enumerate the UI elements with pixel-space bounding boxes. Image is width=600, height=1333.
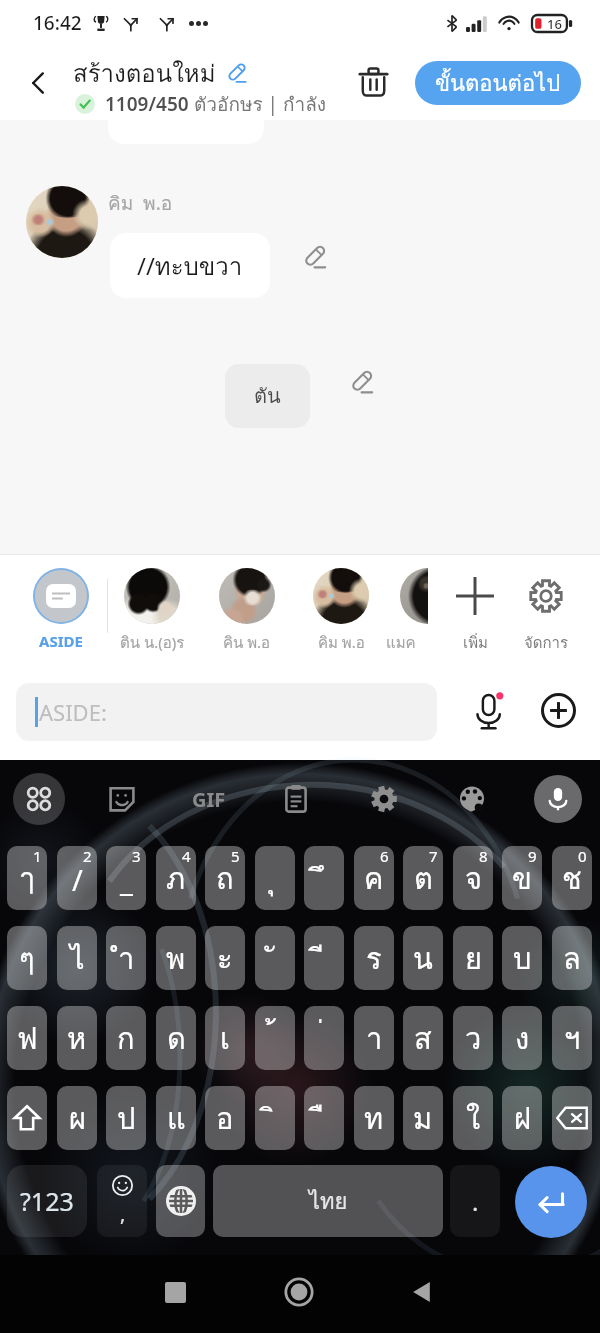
- button[interactable]: Delete: [350, 59, 396, 105]
- button[interactable]: Menu: [0, 760, 78, 838]
- button[interactable]: ๆ: [7, 926, 47, 990]
- staticText: ว: [465, 1016, 482, 1062]
- button[interactable]: จัดการ: [512, 555, 580, 655]
- button[interactable]: ฯ: [552, 1006, 592, 1070]
- button[interactable]: พ: [156, 926, 196, 990]
- staticText: _: [120, 860, 133, 899]
- button[interactable]: น: [403, 926, 443, 990]
- button[interactable]: ำ: [106, 926, 146, 990]
- button[interactable]: เ: [205, 1006, 245, 1070]
- button[interactable]: ึ: [304, 846, 344, 910]
- button[interactable]: ิ: [255, 1086, 295, 1150]
- button[interactable]: GIF: [165, 760, 252, 838]
- button[interactable]: ท: [354, 1086, 394, 1150]
- button[interactable]: ?123: [7, 1165, 87, 1237]
- button[interactable]: Avatar: [26, 186, 98, 258]
- button[interactable]: [552, 1086, 592, 1150]
- button[interactable]: แ: [156, 1086, 196, 1150]
- button[interactable]: ร: [354, 926, 394, 990]
- button[interactable]: ติน น.(อ)ร: [105, 555, 199, 660]
- button[interactable]: ไ: [57, 926, 97, 990]
- button[interactable]: _: [106, 846, 146, 910]
- button[interactable]: //ทะบขวา: [110, 233, 270, 298]
- button[interactable]: ตัน: [225, 364, 310, 428]
- button[interactable]: คิน พ.อ: [200, 555, 294, 660]
- staticText: ฟ: [17, 1016, 38, 1062]
- button[interactable]: ต: [403, 846, 443, 910]
- button[interactable]: Emoji: [97, 1165, 147, 1237]
- button[interactable]: ม: [403, 1086, 443, 1150]
- button[interactable]: ่: [304, 1006, 344, 1070]
- button[interactable]: [400, 568, 428, 624]
- staticText: พ: [166, 936, 186, 982]
- button[interactable]: Change language: [156, 1165, 205, 1237]
- button[interactable]: า: [354, 1006, 394, 1070]
- button[interactable]: ั: [255, 926, 295, 990]
- button[interactable]: ผ: [57, 1086, 97, 1150]
- button[interactable]: ๅ: [7, 846, 47, 910]
- staticText: /: [72, 860, 83, 899]
- button[interactable]: Clipboard: [252, 760, 340, 838]
- button[interactable]: ื: [304, 1086, 344, 1150]
- button[interactable]: ป: [106, 1086, 146, 1150]
- button[interactable]: Settings: [340, 760, 428, 838]
- button[interactable]: ขั้นตอนต่อไป: [415, 61, 581, 105]
- button[interactable]: ไทย: [213, 1165, 443, 1237]
- button[interactable]: ถ: [205, 846, 245, 910]
- button[interactable]: ก: [106, 1006, 146, 1070]
- button[interactable]: จ: [453, 846, 493, 910]
- staticText: 5: [231, 846, 240, 866]
- button[interactable]: Sticker: [78, 760, 165, 838]
- button[interactable]: ห: [57, 1006, 97, 1070]
- staticText: ๅ: [20, 856, 35, 902]
- button[interactable]: Back: [14, 59, 62, 107]
- staticText: ASIDE:: [39, 697, 107, 727]
- button[interactable]: ภ: [156, 846, 196, 910]
- button[interactable]: เพิ่ม: [441, 555, 509, 655]
- button[interactable]: Voice input: [465, 687, 513, 735]
- button[interactable]: Back: [398, 1268, 446, 1316]
- button[interactable]: ใ: [453, 1086, 493, 1150]
- button[interactable]: ี: [304, 926, 344, 990]
- button[interactable]: คิม พ.อ: [294, 555, 388, 660]
- button[interactable]: บ: [502, 926, 542, 990]
- staticText: 0: [578, 846, 587, 866]
- button[interactable]: ช: [552, 846, 592, 910]
- button[interactable]: Recents: [151, 1268, 199, 1316]
- button[interactable]: ย: [453, 926, 493, 990]
- button[interactable]: Theme: [428, 760, 516, 838]
- button[interactable]: Enter: [515, 1166, 587, 1238]
- button[interactable]: ล: [552, 926, 592, 990]
- button[interactable]: ้: [255, 1006, 295, 1070]
- staticText: 8: [479, 846, 488, 866]
- button[interactable]: Home: [275, 1268, 323, 1316]
- button[interactable]: .: [450, 1165, 500, 1237]
- button[interactable]: ASIDE: [13, 555, 109, 651]
- staticText: ช: [562, 856, 582, 902]
- staticText: จัดการ: [524, 631, 569, 655]
- button[interactable]: ง: [502, 1006, 542, 1070]
- button[interactable]: ส: [403, 1006, 443, 1070]
- button[interactable]: Edit: [294, 237, 334, 277]
- staticText: ขั้นตอนต่อไป: [435, 66, 561, 101]
- button[interactable]: ค: [354, 846, 394, 910]
- button[interactable]: Add: [534, 686, 582, 734]
- button[interactable]: ฝ: [502, 1086, 542, 1150]
- staticText: ส: [414, 1016, 432, 1062]
- staticText: ไ: [70, 936, 85, 982]
- button[interactable]: ว: [453, 1006, 493, 1070]
- staticText: ท: [364, 1096, 384, 1142]
- button[interactable]: Voice: [516, 760, 600, 838]
- staticText: จ: [465, 856, 482, 902]
- button[interactable]: อ: [205, 1086, 245, 1150]
- button[interactable]: ะ: [205, 926, 245, 990]
- button[interactable]: ุ: [255, 846, 295, 910]
- button[interactable]: ด: [156, 1006, 196, 1070]
- button[interactable]: [7, 1086, 47, 1150]
- button[interactable]: ฟ: [7, 1006, 47, 1070]
- button[interactable]: Edit: [341, 362, 381, 402]
- button[interactable]: ข: [502, 846, 542, 910]
- button[interactable]: ASIDE:: [16, 683, 437, 741]
- button[interactable]: /: [57, 846, 97, 910]
